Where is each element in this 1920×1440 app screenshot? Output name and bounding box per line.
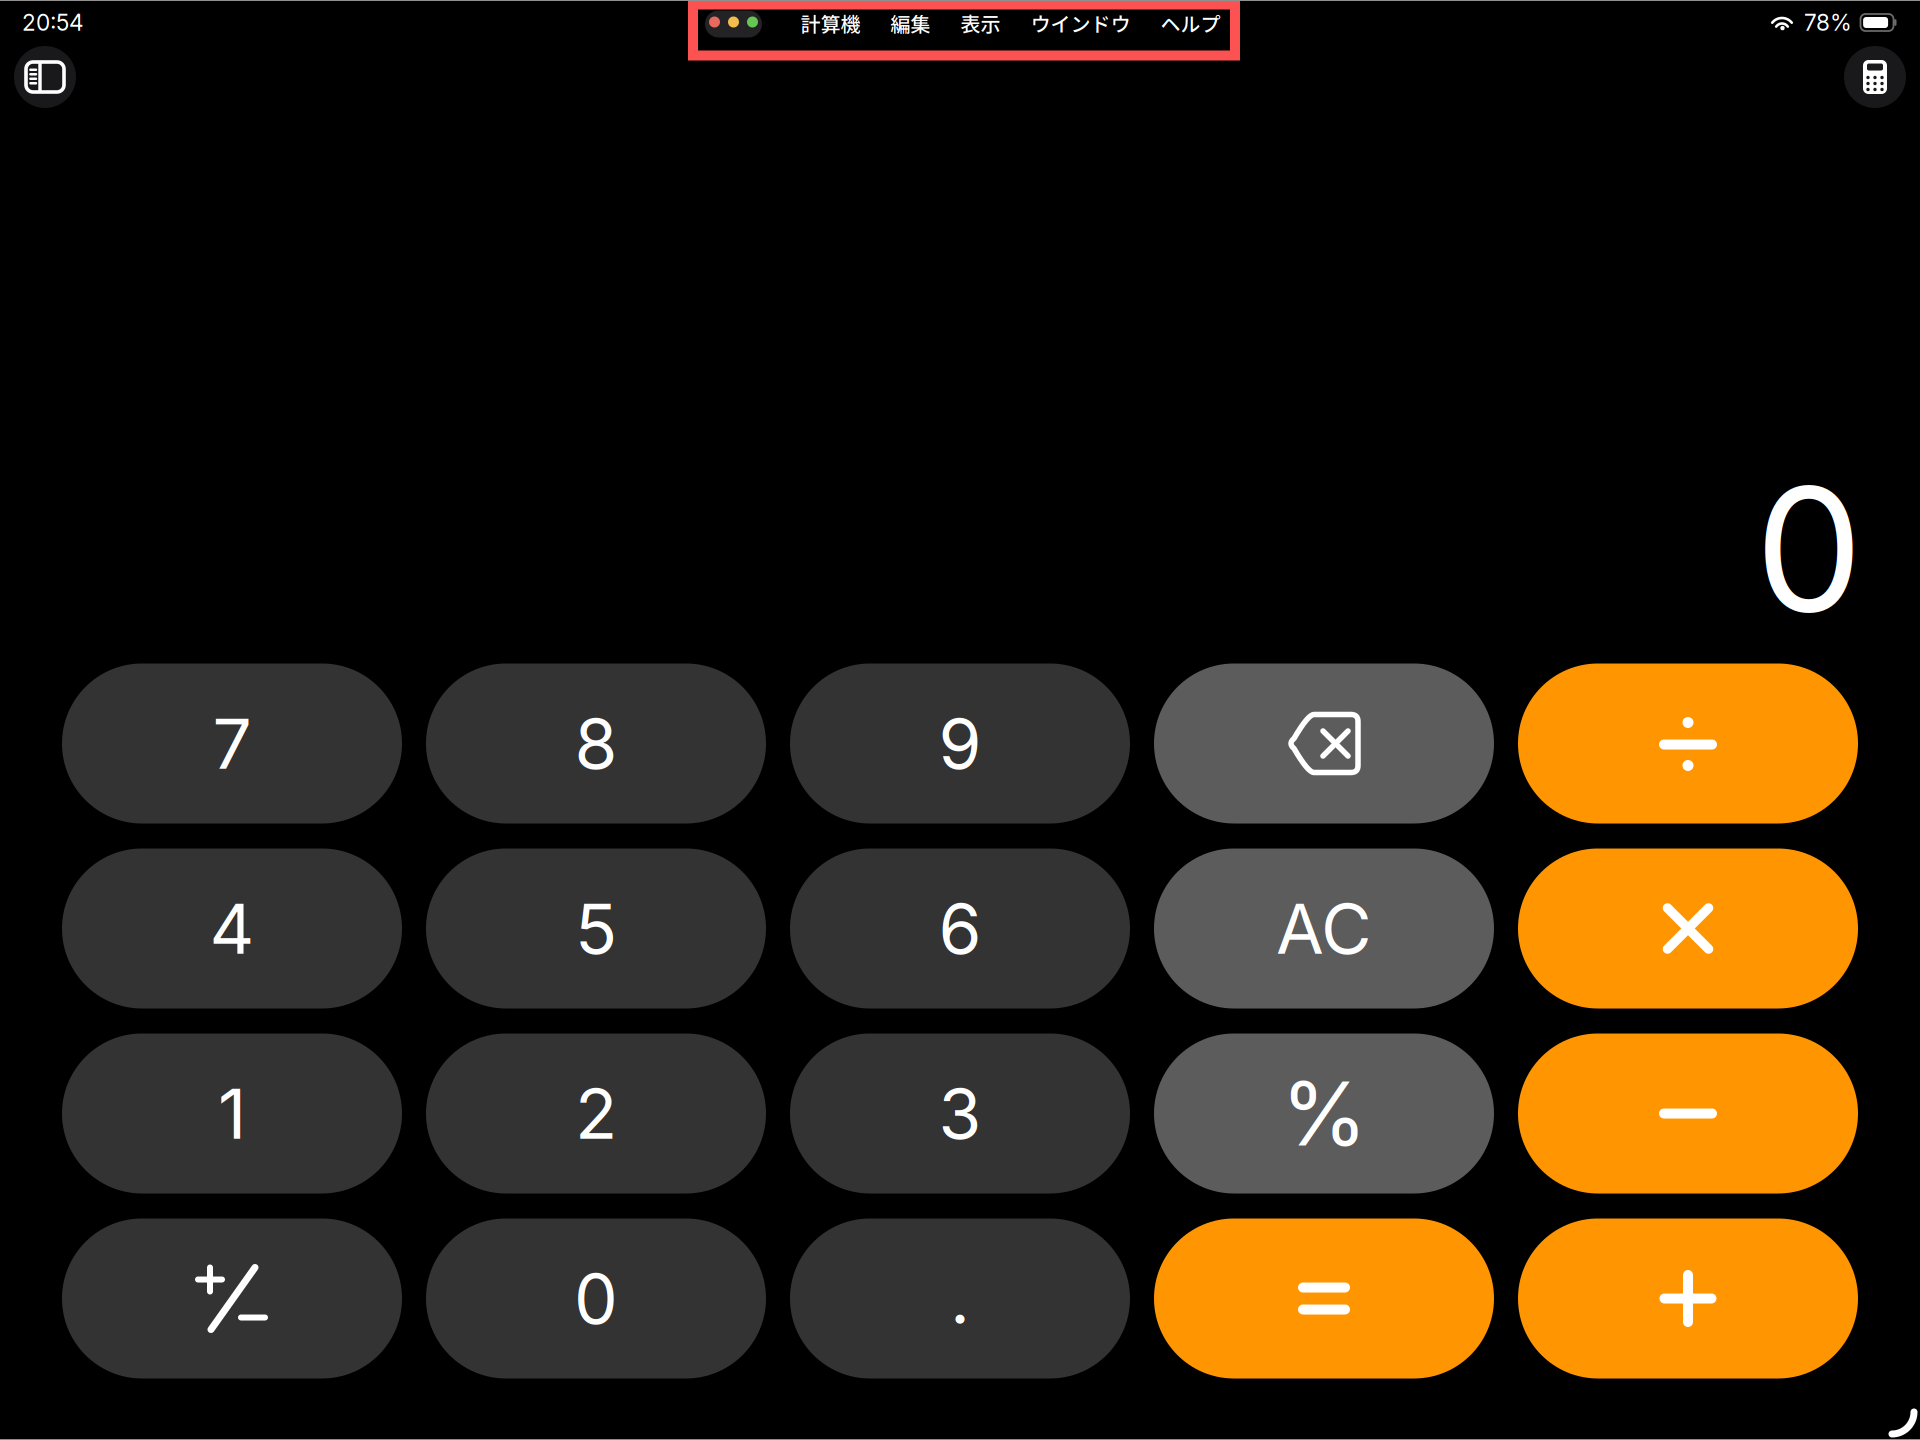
staticText: 2 bbox=[575, 1072, 617, 1155]
staticText: 4 bbox=[209, 887, 254, 970]
button[interactable]: 2 bbox=[426, 1033, 766, 1193]
button[interactable]: % bbox=[1154, 1033, 1494, 1193]
button[interactable]: 8 bbox=[426, 663, 766, 823]
staticText: ヘルプ bbox=[1160, 8, 1220, 37]
button[interactable]: 0 bbox=[426, 1218, 766, 1378]
button[interactable]: Add bbox=[1518, 1218, 1858, 1378]
button[interactable]: Subtract bbox=[1518, 1033, 1858, 1193]
staticText: 0 bbox=[1755, 446, 1863, 652]
button[interactable]: ウインドウ bbox=[1015, 9, 1145, 50]
button[interactable]: Multiply bbox=[1518, 848, 1858, 1008]
button[interactable]: ヘルプ bbox=[1145, 9, 1235, 50]
staticText: . bbox=[950, 1257, 970, 1340]
button[interactable]: Plus Minus bbox=[62, 1218, 402, 1378]
staticText: ウインドウ bbox=[1030, 8, 1130, 37]
button[interactable]: Show Sidebar bbox=[14, 46, 76, 108]
button[interactable]: AC bbox=[1154, 848, 1494, 1008]
staticText: 3 bbox=[938, 1072, 981, 1155]
button[interactable]: 表示 bbox=[945, 9, 1015, 50]
button[interactable]: 1 bbox=[62, 1033, 402, 1193]
button[interactable]: Calculator Mode bbox=[1844, 46, 1906, 108]
staticText: 7 bbox=[212, 702, 251, 785]
staticText: AC bbox=[1276, 887, 1372, 970]
button[interactable]: Backspace bbox=[1154, 663, 1494, 823]
staticText: 5 bbox=[575, 887, 617, 970]
staticText: 編集 bbox=[890, 8, 930, 37]
button[interactable]: 7 bbox=[62, 663, 402, 823]
staticText: % bbox=[1281, 1060, 1367, 1167]
button[interactable]: 計算機 bbox=[785, 9, 875, 50]
button[interactable]: . bbox=[790, 1218, 1130, 1378]
staticText: 表示 bbox=[960, 8, 1000, 37]
staticText: 1 bbox=[218, 1072, 246, 1155]
staticText: 計算機 bbox=[800, 8, 860, 37]
staticText: 0 bbox=[574, 1257, 618, 1340]
button[interactable]: 編集 bbox=[875, 9, 945, 50]
staticText: 9 bbox=[938, 702, 981, 785]
button[interactable]: Equals bbox=[1154, 1218, 1494, 1378]
button[interactable]: 4 bbox=[62, 848, 402, 1008]
staticText: 8 bbox=[574, 702, 617, 785]
button[interactable]: 3 bbox=[790, 1033, 1130, 1193]
button[interactable]: 9 bbox=[790, 663, 1130, 823]
button[interactable]: Divide bbox=[1518, 663, 1858, 823]
button[interactable]: 6 bbox=[790, 848, 1130, 1008]
staticText: 20:54 bbox=[22, 9, 84, 36]
staticText: 78% bbox=[1804, 9, 1852, 36]
staticText: 6 bbox=[938, 887, 981, 970]
button[interactable]: 5 bbox=[426, 848, 766, 1008]
